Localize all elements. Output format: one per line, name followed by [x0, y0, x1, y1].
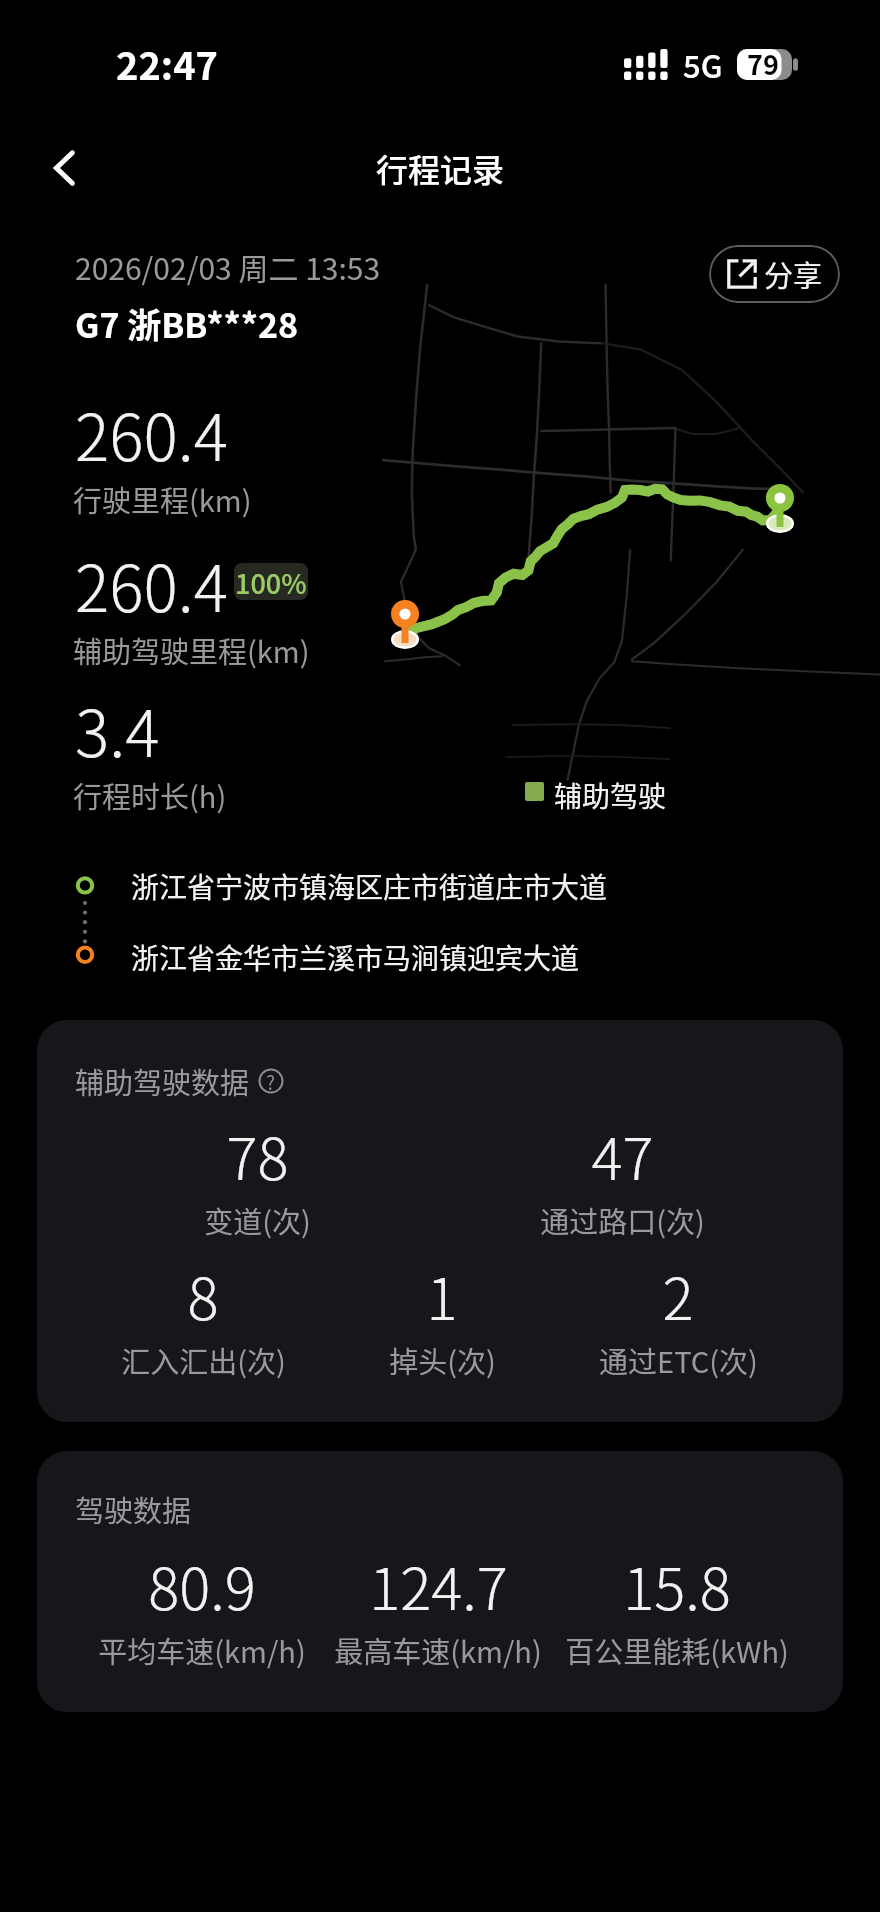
- staticText: 平均车速(km/h): [98, 1629, 306, 1671]
- button[interactable]: 浙江省金华市兰溪市马涧镇迎宾大道: [110, 932, 810, 980]
- staticText: 辅助驾驶里程(km): [73, 629, 310, 671]
- button[interactable]: Back: [34, 136, 98, 200]
- staticText: 分享: [764, 253, 823, 295]
- button[interactable]: 分享: [709, 245, 840, 303]
- button[interactable]: 浙江省宁波市镇海区庄市街道庄市大道: [110, 861, 810, 909]
- staticText: 驾驶数据: [75, 1488, 192, 1530]
- staticText: 汇入汇出(次): [121, 1339, 286, 1381]
- staticText: 5G: [683, 42, 723, 87]
- staticText: 行程时长(h): [73, 774, 227, 816]
- button[interactable]: 驾驶数据: [37, 1451, 843, 1712]
- staticText: 22:47: [116, 36, 219, 91]
- staticText: 通过ETC(次): [599, 1339, 758, 1381]
- staticText: 2: [662, 1253, 694, 1337]
- staticText: G7 浙BB***28: [75, 299, 299, 348]
- staticText: 百公里能耗(kWh): [565, 1629, 789, 1671]
- staticText: 1: [426, 1253, 458, 1337]
- staticText: 3.4: [75, 683, 160, 776]
- staticText: 80.9: [148, 1543, 256, 1627]
- staticText: 变道(次): [204, 1199, 311, 1241]
- staticText: 260.4: [75, 387, 228, 480]
- staticText: 掉头(次): [389, 1339, 496, 1381]
- staticText: 最高车速(km/h): [334, 1629, 542, 1671]
- button[interactable]: Trip route map: [366, 285, 880, 780]
- staticText: 行程记录: [376, 145, 505, 191]
- staticText: 2026/02/03 周二 13:53: [75, 245, 381, 288]
- staticText: 8: [187, 1253, 219, 1337]
- staticText: 浙江省宁波市镇海区庄市街道庄市大道: [131, 866, 608, 907]
- staticText: 辅助驾驶: [554, 775, 667, 816]
- button[interactable]: 辅助驾驶数据: [37, 1020, 843, 1422]
- staticText: 260.4: [75, 538, 228, 631]
- staticText: 行驶里程(km): [73, 478, 252, 520]
- staticText: 100%: [235, 563, 307, 600]
- staticText: 15.8: [623, 1543, 731, 1627]
- staticText: 47: [591, 1113, 654, 1197]
- staticText: 辅助驾驶数据: [75, 1060, 250, 1102]
- staticText: 124.7: [369, 1543, 508, 1627]
- staticText: 浙江省金华市兰溪市马涧镇迎宾大道: [131, 937, 580, 978]
- staticText: 79: [747, 44, 779, 75]
- staticText: 78: [226, 1113, 289, 1197]
- staticText: 通过路口(次): [540, 1199, 705, 1241]
- staticText: ?: [266, 1068, 276, 1092]
